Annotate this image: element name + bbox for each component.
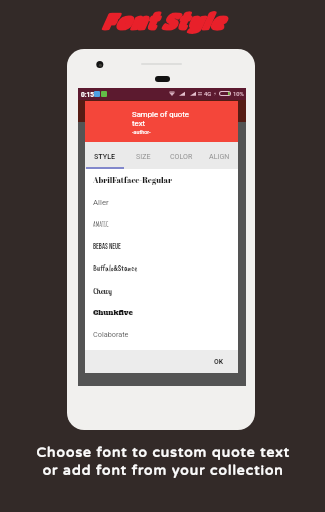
button[interactable]: Aller bbox=[85, 191, 238, 213]
staticText: Buffalo&Stance bbox=[93, 263, 138, 273]
button[interactable]: Chewy bbox=[85, 279, 238, 301]
button[interactable]: AbrilFatface-Regular bbox=[85, 169, 238, 191]
staticText: 4G bbox=[204, 91, 212, 98]
button[interactable]: AMATIC bbox=[85, 213, 238, 235]
staticText: OK bbox=[214, 358, 224, 366]
staticText: ALIGN bbox=[209, 152, 230, 160]
staticText: Colaborate bbox=[93, 330, 129, 339]
staticText: Chunkfive bbox=[93, 307, 133, 317]
staticText: BEBAS NEUE bbox=[93, 242, 121, 251]
staticText: AMATIC bbox=[93, 219, 109, 229]
staticText: or add font from your collection bbox=[42, 462, 284, 479]
staticText: Choose font to custom quote text bbox=[36, 444, 290, 461]
staticText: STYLE bbox=[94, 152, 116, 160]
button[interactable]: Colaborate bbox=[85, 323, 238, 345]
staticText: Chewy bbox=[93, 286, 113, 295]
staticText: COLOR bbox=[170, 152, 193, 160]
button[interactable]: COLOR bbox=[162, 142, 200, 169]
button[interactable]: Chunkfive bbox=[85, 301, 238, 323]
staticText: 10% bbox=[233, 91, 244, 98]
staticText: -author- bbox=[132, 129, 151, 135]
staticText: AbrilFatface-Regular bbox=[93, 175, 172, 186]
staticText: SIZE bbox=[136, 152, 151, 160]
staticText: Font Style bbox=[101, 8, 224, 34]
button[interactable]: SIZE bbox=[124, 142, 162, 169]
button[interactable]: BEBAS NEUE bbox=[85, 235, 238, 257]
staticText: 0:15 bbox=[81, 91, 95, 99]
button[interactable]: Buffalo&Stance bbox=[85, 257, 238, 279]
staticText: Aller bbox=[93, 198, 109, 207]
button[interactable]: STYLE bbox=[85, 142, 124, 169]
staticText: Sample of quote text bbox=[132, 110, 189, 128]
button[interactable]: ALIGN bbox=[200, 142, 238, 169]
button[interactable]: OK bbox=[200, 353, 238, 371]
